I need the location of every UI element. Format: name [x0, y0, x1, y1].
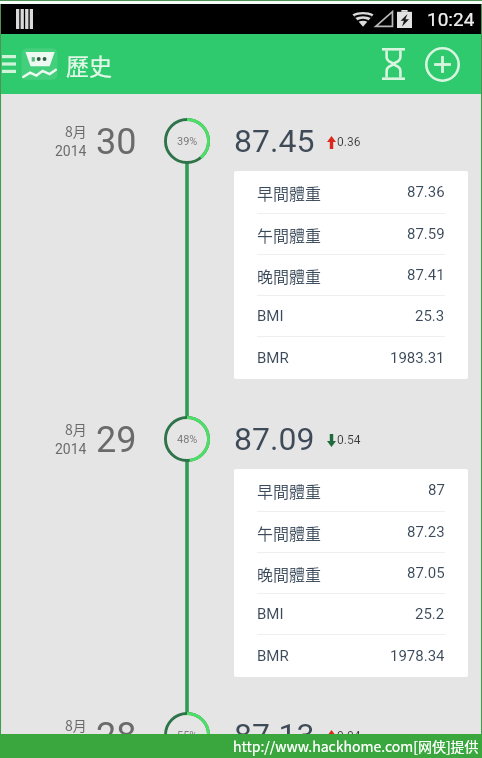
staticText: 25.3: [415, 307, 445, 325]
button[interactable]: Open navigation menu: [1, 34, 18, 94]
staticText: 2014: [55, 143, 87, 159]
staticText: 87: [428, 481, 445, 499]
staticText: 歷史: [66, 48, 112, 81]
staticText: BMR: [257, 349, 289, 367]
staticText: 87.23: [407, 523, 445, 541]
button[interactable]: 早間體重: [234, 171, 468, 379]
staticText: http://www.hackhome.com[网侠]提供: [233, 736, 479, 756]
staticText: BMI: [257, 605, 284, 623]
staticText: 1983.31: [390, 349, 445, 367]
staticText: BMI: [257, 307, 284, 325]
staticText: 8月: [65, 715, 87, 735]
staticText: 29: [96, 419, 137, 461]
staticText: 39%: [177, 135, 198, 148]
staticText: BMR: [257, 647, 289, 665]
staticText: 0.36: [337, 135, 361, 149]
staticText: 午間體重: [257, 223, 322, 246]
staticText: 晚間體重: [257, 264, 322, 287]
staticText: 87.41: [407, 266, 445, 284]
staticText: 午間體重: [257, 521, 322, 544]
staticText: 早間體重: [257, 479, 322, 502]
staticText: 2014: [55, 441, 87, 457]
button[interactable]: Add record: [417, 34, 468, 94]
staticText: 87.13: [234, 716, 315, 754]
staticText: 87.09: [234, 420, 315, 458]
staticText: 8月: [65, 419, 87, 439]
staticText: 0.54: [337, 433, 361, 447]
staticText: 10:24: [427, 8, 475, 30]
staticText: 87.59: [407, 225, 445, 243]
staticText: 早間體重: [257, 181, 322, 204]
staticText: 28: [96, 715, 137, 757]
staticText: 87.36: [407, 183, 445, 201]
button[interactable]: Pending history: [369, 34, 417, 94]
staticText: 1978.34: [390, 647, 445, 665]
staticText: 晚間體重: [257, 562, 322, 585]
staticText: 48%: [177, 433, 198, 446]
staticText: 87.45: [234, 122, 315, 160]
staticText: 30: [96, 121, 137, 163]
staticText: 8月: [65, 121, 87, 141]
staticText: 55%: [177, 729, 198, 742]
button[interactable]: 早間體重: [234, 469, 468, 677]
staticText: 25.2: [415, 605, 445, 623]
staticText: 87.05: [407, 564, 445, 582]
staticText: 0.04: [337, 729, 361, 743]
